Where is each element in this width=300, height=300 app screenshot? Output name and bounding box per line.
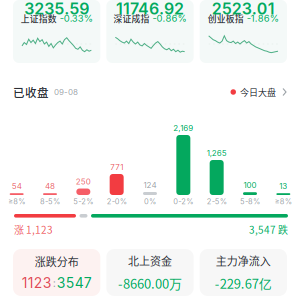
button[interactable]: 2523.01 — [200, 0, 287, 63]
staticText: -0.33% — [60, 13, 93, 24]
staticText: 771 — [110, 162, 123, 172]
button[interactable]: 3235.59 — [13, 0, 100, 63]
staticText: 3,547 跌 — [249, 222, 288, 237]
staticText: 上证指数 — [21, 12, 57, 25]
button[interactable]: 主力净流入 — [200, 249, 287, 296]
staticText: 主力净流入 — [216, 253, 271, 268]
staticText: 11746.92 — [116, 0, 184, 18]
staticText: 3235.59 — [24, 0, 89, 18]
staticText: 5-2% — [73, 197, 93, 206]
button[interactable]: 涨跌分布 — [13, 249, 100, 296]
staticText: 8-5% — [40, 197, 60, 206]
staticText: 深证成指 — [113, 12, 149, 25]
staticText: -229.67亿 — [215, 274, 272, 292]
button[interactable]: 今日大盘 — [230, 85, 287, 98]
staticText: 1123 — [22, 274, 52, 291]
staticText: -1.86% — [247, 13, 279, 24]
staticText: 124 — [143, 180, 156, 190]
staticText: 1,265 — [207, 148, 227, 158]
staticText: 0% — [144, 197, 156, 206]
staticText: 2523.01 — [212, 0, 275, 18]
staticText: 2-0% — [107, 197, 127, 206]
staticText: 北上资金 — [128, 253, 172, 268]
staticText: 创业板指 — [208, 12, 244, 25]
staticText: : — [53, 276, 56, 290]
staticText: 涨 1,123 — [14, 222, 53, 237]
staticText: 13 — [279, 181, 287, 191]
staticText: 100 — [243, 180, 256, 190]
staticText: 09-08 — [54, 87, 78, 97]
button[interactable]: 北上资金 — [106, 249, 194, 296]
staticText: ≥8% — [275, 197, 292, 206]
staticText: ≥8% — [8, 197, 25, 206]
staticText: 48 — [45, 181, 55, 191]
staticText: 涨跌分布 — [35, 254, 79, 269]
staticText: 54 — [12, 181, 22, 191]
staticText: 250 — [76, 177, 91, 186]
staticText: -8660.00万 — [118, 274, 182, 292]
staticText: 已收盘 — [13, 84, 49, 100]
staticText: -0.86% — [152, 13, 186, 24]
staticText: 今日大盘 — [240, 85, 276, 98]
staticText: 2-5% — [207, 197, 227, 206]
staticText: 0-2% — [173, 197, 193, 206]
button[interactable]: 11746.92 — [106, 0, 194, 63]
staticText: 5-8% — [240, 197, 260, 206]
staticText: 3547 — [57, 274, 92, 291]
staticText: 2,169 — [173, 123, 193, 133]
